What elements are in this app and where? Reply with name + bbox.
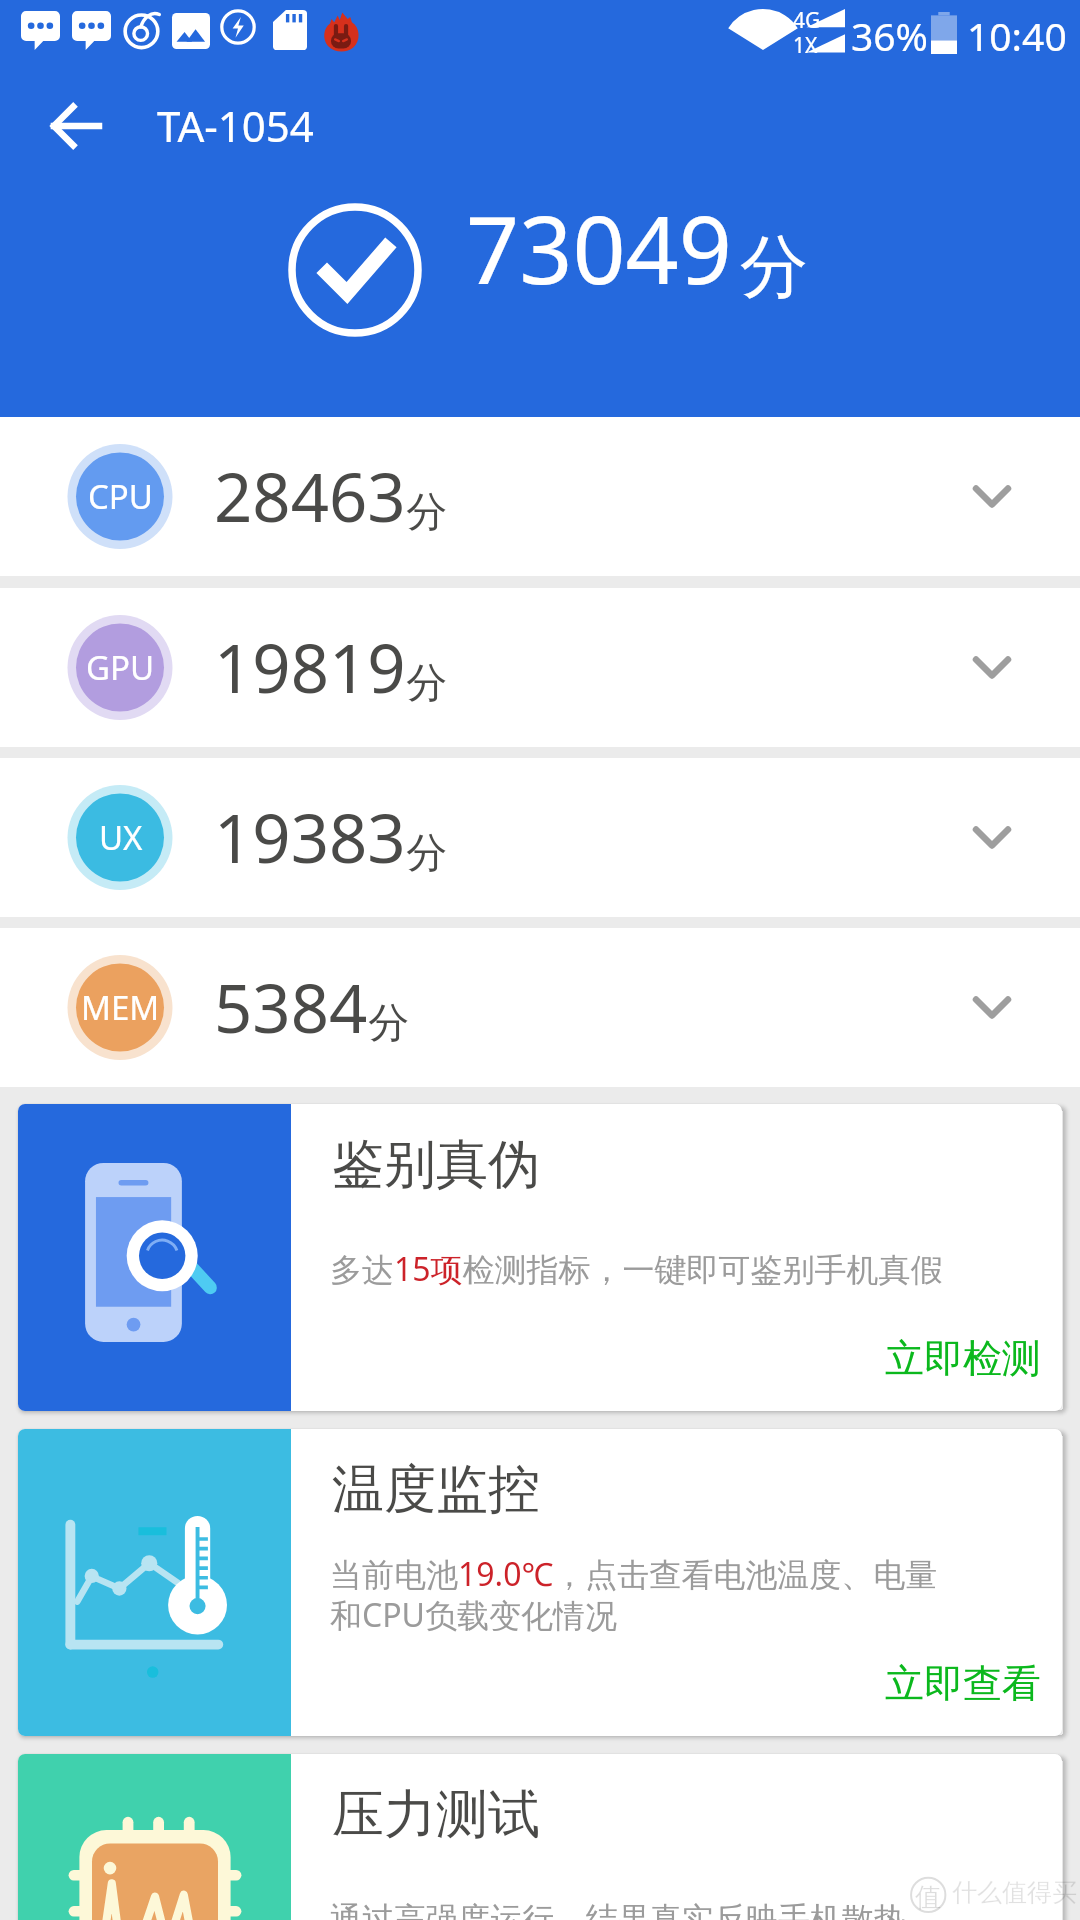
staticText: 分 <box>406 658 447 710</box>
button[interactable]: CPU <box>0 417 1080 576</box>
button[interactable]: Expand <box>960 417 1080 576</box>
staticText: 28463 <box>214 450 406 541</box>
staticText: 36% <box>851 9 929 62</box>
button[interactable]: Expand <box>960 758 1080 917</box>
staticText: 分 <box>368 998 409 1050</box>
button[interactable]: Expand <box>960 928 1080 1087</box>
staticText: 73049 <box>466 185 732 312</box>
staticText: 分 <box>740 225 808 311</box>
button[interactable]: GPU <box>0 588 1080 747</box>
button[interactable]: UX <box>0 758 1080 917</box>
staticText: 1X <box>793 31 818 60</box>
staticText: 分 <box>406 487 447 539</box>
staticText: 立即检测 <box>885 1334 1041 1383</box>
staticText: GPU <box>86 645 155 690</box>
staticText: 分 <box>406 828 447 880</box>
staticText: 温度监控 <box>332 1457 540 1523</box>
staticText: 压力测试 <box>332 1782 540 1848</box>
staticText: 立即查看 <box>885 1659 1041 1708</box>
staticText: CPU <box>88 474 153 519</box>
staticText: UX <box>99 815 143 860</box>
staticText: 通过高强度运行，结果真实反映手机散热、 <box>330 1899 938 1920</box>
staticText: 10:40 <box>967 9 1067 62</box>
staticText: 当前电池19.0℃，点击查看电池温度、电量 和CPU负载变化情况 <box>330 1552 938 1637</box>
button[interactable]: MEM <box>0 928 1080 1087</box>
staticText: TA-1054 <box>157 97 314 154</box>
staticText: 什么值得买 <box>952 1877 1077 1908</box>
button[interactable]: 温度监控 <box>18 1429 1062 1736</box>
staticText: 19383 <box>214 791 406 882</box>
staticText: 值 <box>915 1881 941 1914</box>
staticText: MEM <box>81 985 160 1030</box>
button[interactable]: 压力测试 <box>18 1754 1062 1920</box>
button[interactable]: Expand <box>960 588 1080 747</box>
button[interactable]: 鉴别真伪 <box>18 1104 1062 1411</box>
staticText: 多达15项检测指标，一键即可鉴别手机真假 <box>330 1247 943 1291</box>
staticText: 鉴别真伪 <box>332 1132 540 1198</box>
button[interactable]: Back <box>32 82 120 170</box>
staticText: 19819 <box>214 621 406 712</box>
staticText: 4G <box>793 6 821 35</box>
staticText: 5384 <box>214 961 368 1052</box>
